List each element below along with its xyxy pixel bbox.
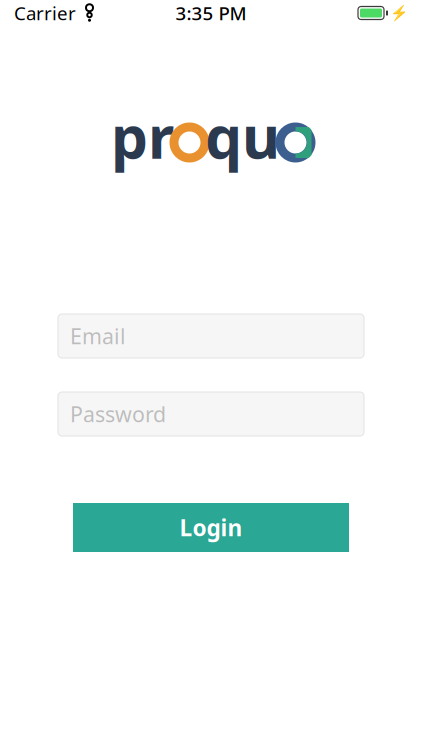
staticText: pr (111, 97, 174, 175)
staticText: ⚡ (390, 5, 408, 21)
staticText: Password (70, 400, 166, 428)
staticText: Carrier (14, 1, 76, 25)
button[interactable]: Login (73, 503, 349, 552)
staticText: Login (179, 512, 242, 542)
staticText: qu (205, 97, 280, 175)
staticText: 3:35 PM (175, 1, 246, 25)
staticText: Email (70, 322, 126, 350)
